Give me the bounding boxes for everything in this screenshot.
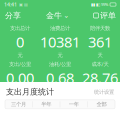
staticText: 元	[97, 88, 102, 95]
staticText: 天	[97, 52, 102, 59]
staticText: 元	[57, 52, 62, 59]
staticText: 分享	[5, 11, 21, 20]
staticText: 支出/公里	[9, 61, 31, 68]
staticText: 成本/天	[91, 61, 108, 68]
button[interactable]: 一年	[60, 100, 87, 109]
button[interactable]: 半年	[33, 100, 60, 109]
staticText: 全部	[96, 101, 106, 108]
staticText: 支出月度统计	[6, 87, 54, 97]
button[interactable]: 三个月	[5, 100, 32, 109]
button[interactable]: 全部	[88, 100, 115, 109]
staticText: 14:41	[4, 1, 17, 8]
button[interactable]: 金牛	[42, 9, 73, 22]
staticText: 元	[17, 52, 22, 59]
staticText: 支出总计	[10, 25, 30, 32]
staticText: ⌄	[63, 12, 69, 19]
staticText: ▣ ▤	[19, 2, 28, 7]
staticText: 油耗/公里	[49, 61, 71, 68]
staticText: 三个月	[11, 101, 26, 108]
staticText: ▮▮ ▮▯ 99%	[91, 2, 108, 7]
button[interactable]: 评单	[89, 9, 120, 22]
staticText: 金牛	[46, 11, 62, 20]
staticText: 一年	[69, 101, 79, 108]
staticText: 0.00	[6, 68, 34, 88]
staticText: 油费总计	[50, 25, 70, 32]
staticText: 28.76	[82, 68, 118, 88]
staticText: 10381	[40, 32, 80, 52]
staticText: 0	[16, 32, 24, 52]
staticText: 元	[17, 88, 22, 95]
staticText: 半年	[41, 101, 51, 108]
button[interactable]: 分享	[0, 9, 26, 22]
staticText: 陪伴天数	[90, 25, 110, 32]
staticText: 统计设置	[94, 89, 114, 95]
staticText: 0.68	[46, 68, 74, 88]
button[interactable]: 统计设置	[94, 88, 114, 96]
staticText: 361	[88, 32, 112, 52]
staticText: 评单	[100, 11, 116, 20]
